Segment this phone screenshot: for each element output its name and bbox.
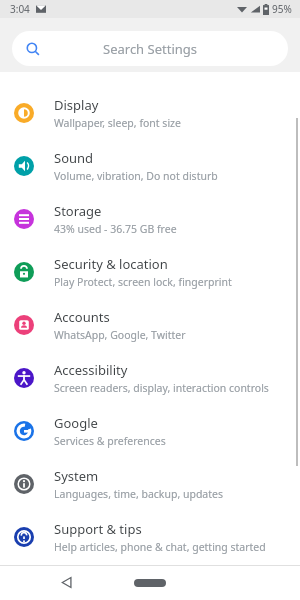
staticText: Display <box>54 96 99 114</box>
staticText: Languages, time, backup, updates <box>54 487 223 501</box>
staticText: Accounts <box>54 308 110 326</box>
button[interactable]: Sound <box>0 139 300 192</box>
button[interactable]: Security & location <box>0 245 300 298</box>
staticText: System <box>54 467 99 485</box>
button[interactable]: Back <box>60 576 73 589</box>
staticText: Security & location <box>54 255 168 273</box>
other: Search <box>26 42 40 56</box>
staticText: 3:04 <box>10 2 30 16</box>
button[interactable]: System <box>0 457 300 510</box>
staticText: 95% <box>272 2 292 16</box>
staticText: 43% used - 36.75 GB free <box>54 222 177 236</box>
button[interactable]: Home <box>134 579 166 587</box>
button[interactable]: Storage <box>0 192 300 245</box>
staticText: Accessibility <box>54 361 128 379</box>
button[interactable]: Search <box>12 31 288 66</box>
button[interactable]: Accounts <box>0 298 300 351</box>
button[interactable]: Accessibility <box>0 351 300 404</box>
staticText: Sound <box>54 149 94 167</box>
staticText: Search Settings <box>40 40 260 58</box>
staticText: Volume, vibration, Do not disturb <box>54 169 218 183</box>
staticText: Support & tips <box>54 520 142 538</box>
staticText: Help articles, phone & chat, getting sta… <box>54 540 266 554</box>
staticText: Wallpaper, sleep, font size <box>54 116 181 130</box>
staticText: Play Protect, screen lock, fingerprint <box>54 275 232 289</box>
button[interactable]: Support & tips <box>0 510 300 563</box>
staticText: Google <box>54 414 98 432</box>
staticText: Storage <box>54 202 102 220</box>
staticText: Services & preferences <box>54 434 166 448</box>
button[interactable]: Display <box>0 86 300 139</box>
button[interactable]: Google <box>0 404 300 457</box>
staticText: WhatsApp, Google, Twitter <box>54 328 186 342</box>
staticText: Screen readers, display, interaction con… <box>54 381 269 395</box>
